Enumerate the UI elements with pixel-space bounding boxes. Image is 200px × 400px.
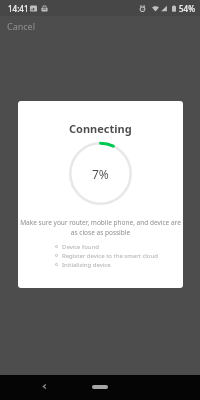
staticText: Device found xyxy=(62,243,99,251)
staticText: 54% xyxy=(179,3,195,14)
staticText: Register device to the smart cloud xyxy=(62,252,158,260)
button[interactable]: Cancel xyxy=(3,18,40,34)
staticText: Connecting xyxy=(69,121,132,136)
staticText: 7% xyxy=(92,166,109,182)
staticText: Make sure your router, mobile phone, and… xyxy=(20,218,181,236)
button[interactable]: Back xyxy=(34,378,54,395)
button[interactable]: Home xyxy=(82,378,118,395)
staticText: 14:41 xyxy=(8,3,29,14)
staticText: Cancel xyxy=(7,20,36,32)
staticText: Initializing device xyxy=(62,261,111,269)
